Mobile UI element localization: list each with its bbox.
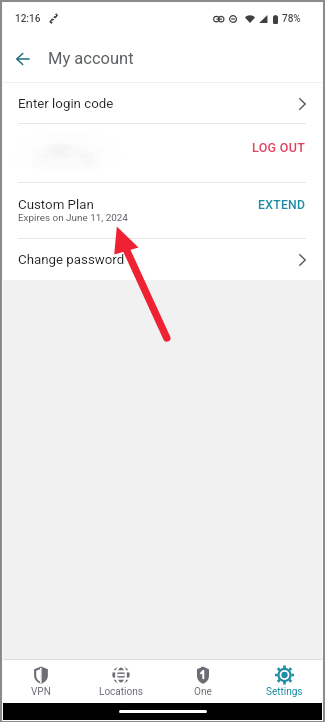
staticText: My account xyxy=(48,49,134,68)
button[interactable]: Settings xyxy=(242,660,322,703)
button[interactable]: Custom Plan xyxy=(3,183,322,238)
staticText: Enter login code xyxy=(18,96,114,112)
button[interactable]: One xyxy=(162,660,242,703)
button[interactable]: Back xyxy=(8,44,38,74)
staticText: 12:16 xyxy=(15,13,41,25)
staticText: Expires on June 11, 2024 xyxy=(18,212,128,224)
staticText: VPN xyxy=(31,686,51,698)
staticText: Settings xyxy=(266,686,303,698)
staticText: LOG OUT xyxy=(252,140,306,155)
button[interactable]: Enter login code xyxy=(3,83,322,123)
button[interactable]: Locations xyxy=(82,660,162,703)
staticText: One xyxy=(194,686,212,698)
button[interactable]: Change password xyxy=(3,239,322,280)
staticText: Custom Plan xyxy=(18,197,94,213)
button[interactable]: LOG OUT xyxy=(3,124,322,182)
staticText: Locations xyxy=(99,686,143,698)
button[interactable]: VPN xyxy=(3,660,82,703)
staticText: EXTEND xyxy=(258,198,306,212)
staticText: Change password xyxy=(18,252,125,268)
staticText: 78% xyxy=(282,13,301,25)
